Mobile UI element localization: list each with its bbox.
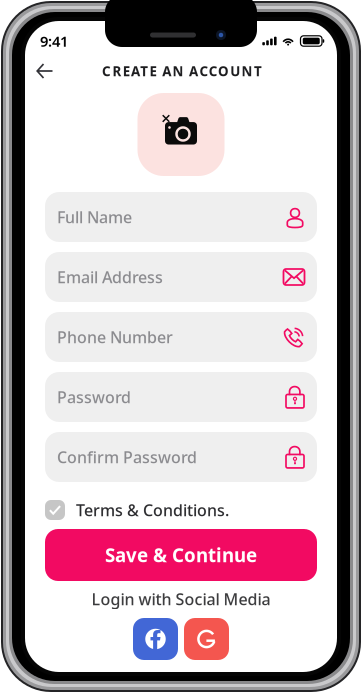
- staticText: Phone Number: [57, 326, 173, 348]
- button[interactable]: Password: [45, 372, 317, 422]
- button[interactable]: Email Address: [45, 252, 317, 302]
- button[interactable]: Full Name: [45, 192, 317, 242]
- staticText: Terms & Conditions.: [76, 499, 229, 521]
- staticText: 9:41: [40, 31, 68, 51]
- button[interactable]: Phone Number: [45, 312, 317, 362]
- staticText: Password: [57, 386, 131, 408]
- staticText: Full Name: [57, 206, 132, 228]
- button[interactable]: Sign in with Google: [184, 618, 229, 660]
- button[interactable]: Add profile photo: [137, 93, 224, 176]
- button[interactable]: Save & Continue: [45, 529, 317, 581]
- staticText: Email Address: [57, 266, 163, 288]
- button[interactable]: Back: [28, 54, 62, 88]
- button[interactable]: Confirm Password: [45, 432, 317, 482]
- staticText: Login with Social Media: [91, 588, 270, 610]
- staticText: Confirm Password: [57, 446, 197, 468]
- staticText: CREATE AN ACCOUNT: [102, 62, 262, 80]
- button[interactable]: Terms & Conditions.: [45, 500, 317, 520]
- staticText: Save & Continue: [105, 543, 257, 567]
- button[interactable]: Sign in with Facebook: [133, 618, 178, 660]
